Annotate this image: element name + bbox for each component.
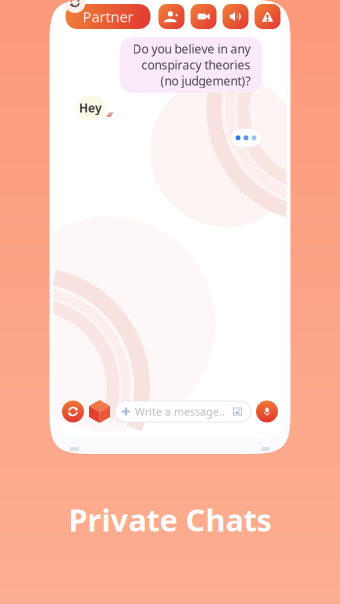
staticText: Partner (82, 7, 133, 26)
button[interactable]: Add contact (158, 4, 184, 29)
staticText: Write a message.. (135, 404, 225, 419)
button[interactable]: Games (89, 400, 110, 423)
button[interactable]: New partner (62, 400, 84, 422)
button[interactable]: Report (254, 4, 280, 29)
button[interactable]: Voice message (256, 400, 278, 422)
staticText: Private Chats (68, 499, 271, 540)
button[interactable]: Speaker (222, 4, 248, 29)
button[interactable]: Video call (190, 4, 216, 29)
staticText: Do you believe in any conspiracy theorie… (132, 41, 250, 89)
button[interactable]: Partner (65, 4, 150, 29)
staticText: Hey (79, 100, 102, 116)
button[interactable]: Write a message.. (115, 401, 251, 422)
